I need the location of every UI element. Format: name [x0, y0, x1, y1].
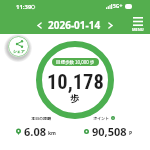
staticText: MENU [132, 27, 144, 32]
staticText: 2026-01-14 [48, 18, 101, 32]
button[interactable]: Menu [132, 17, 144, 32]
staticText: 90,508 [92, 124, 127, 139]
staticText: 10,178 [47, 70, 104, 94]
button[interactable]: ポイント [72, 115, 144, 139]
button[interactable]: Share [8, 36, 29, 57]
button[interactable]: 本日の距離 [0, 115, 72, 139]
staticText: 本日の距離 [31, 115, 51, 121]
button[interactable]: Next day [102, 17, 118, 33]
staticText: ポイント [93, 115, 109, 121]
staticText: 目標歩数 10,000 歩 [56, 59, 95, 66]
staticText: 歩 [70, 91, 80, 105]
staticText: シェア [13, 48, 25, 54]
staticText: P [129, 130, 133, 137]
staticText: 11:39 [16, 3, 32, 11]
staticText: 6.08 [24, 124, 46, 139]
button[interactable]: Previous day [31, 17, 47, 33]
staticText: km [48, 130, 56, 137]
staticText: 5G+ [113, 3, 123, 10]
